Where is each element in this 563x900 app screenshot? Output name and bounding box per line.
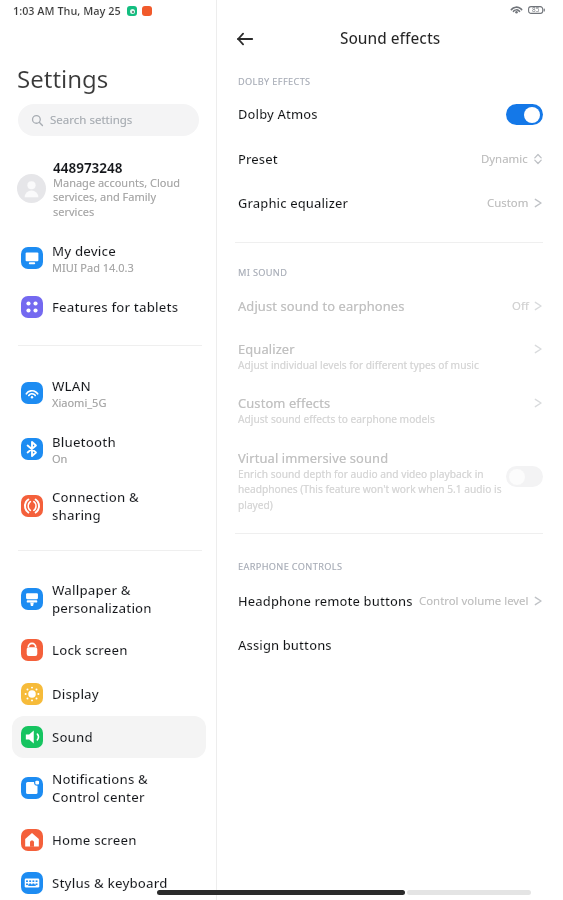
- button[interactable]: WLAN: [12, 372, 206, 414]
- button[interactable]: Headphone remote buttons: [231, 586, 543, 616]
- button[interactable]: Assign buttons: [231, 630, 543, 660]
- button[interactable]: Wallpaper & personalization: [12, 578, 206, 620]
- staticText: Virtual immersive sound: [238, 449, 389, 467]
- button[interactable]: Connection & sharing: [12, 485, 206, 527]
- staticText: MI SOUND: [238, 266, 288, 279]
- staticText: Connection & sharing: [52, 488, 139, 524]
- staticText: Xiaomi_5G: [52, 395, 107, 410]
- staticText: 85: [532, 5, 540, 14]
- staticText: Notifications & Control center: [52, 770, 148, 806]
- button[interactable]: Sound: [12, 716, 206, 758]
- button[interactable]: Dolby Atmos toggle: [506, 104, 543, 125]
- staticText: EARPHONE CONTROLS: [238, 560, 343, 573]
- button[interactable]: Lock screen: [12, 629, 206, 671]
- staticText: My device: [52, 242, 116, 260]
- button[interactable]: Virtual immersive sound toggle: [506, 466, 543, 487]
- staticText: Custom: [487, 195, 529, 211]
- staticText: Search settings: [50, 112, 133, 128]
- button[interactable]: Virtual immersive sound: [231, 443, 543, 518]
- staticText: Lock screen: [52, 641, 128, 659]
- button[interactable]: Equalizer: [231, 334, 543, 379]
- button[interactable]: Preset: [231, 144, 543, 174]
- staticText: Settings: [17, 62, 109, 95]
- staticText: WLAN: [52, 377, 91, 395]
- staticText: Adjust individual levels for different t…: [238, 358, 479, 372]
- staticText: Home screen: [52, 831, 137, 849]
- staticText: 1:03 AM Thu, May 25: [13, 3, 121, 18]
- staticText: Dolby Atmos: [238, 105, 318, 123]
- button[interactable]: Bluetooth: [12, 428, 206, 470]
- staticText: Off: [512, 298, 529, 314]
- staticText: Features for tablets: [52, 298, 179, 316]
- staticText: Sound: [52, 728, 93, 746]
- button[interactable]: Adjust sound to earphones: [231, 291, 543, 321]
- button[interactable]: My device: [12, 237, 206, 279]
- button[interactable]: Dolby Atmos: [231, 99, 543, 129]
- staticText: Dynamic: [481, 151, 528, 167]
- staticText: On: [52, 451, 68, 466]
- staticText: Adjust sound effects to earphone models: [238, 412, 435, 426]
- staticText: MIUI Pad 14.0.3: [52, 260, 134, 275]
- staticText: Graphic equalizer: [238, 194, 349, 212]
- staticText: Enrich sound depth for audio and video p…: [238, 467, 502, 512]
- button[interactable]: Back: [231, 25, 259, 53]
- button[interactable]: Features for tablets: [12, 286, 206, 328]
- button[interactable]: Custom effects: [231, 388, 543, 433]
- staticText: Preset: [238, 150, 278, 168]
- button[interactable]: Display: [12, 673, 206, 715]
- staticText: Display: [52, 685, 99, 703]
- staticText: Assign buttons: [238, 636, 332, 654]
- button[interactable]: Graphic equalizer: [231, 188, 543, 218]
- staticText: Bluetooth: [52, 433, 116, 451]
- staticText: Stylus & keyboard: [52, 874, 168, 892]
- staticText: 448973248: [53, 159, 123, 177]
- button[interactable]: [12, 152, 206, 220]
- button[interactable]: Search settings: [18, 104, 199, 136]
- staticText: Manage accounts, Cloud services, and Fam…: [53, 175, 180, 220]
- staticText: Equalizer: [238, 340, 295, 358]
- staticText: Headphone remote buttons: [238, 592, 413, 610]
- staticText: Sound effects: [340, 28, 441, 49]
- staticText: Control volume level: [419, 593, 529, 609]
- staticText: DOLBY EFFECTS: [238, 75, 311, 88]
- staticText: Adjust sound to earphones: [238, 297, 405, 315]
- button[interactable]: Notifications & Control center: [12, 767, 206, 809]
- button[interactable]: Home screen: [12, 819, 206, 861]
- button[interactable]: Stylus & keyboard: [12, 862, 206, 900]
- staticText: Custom effects: [238, 394, 331, 412]
- staticText: Wallpaper & personalization: [52, 581, 152, 617]
